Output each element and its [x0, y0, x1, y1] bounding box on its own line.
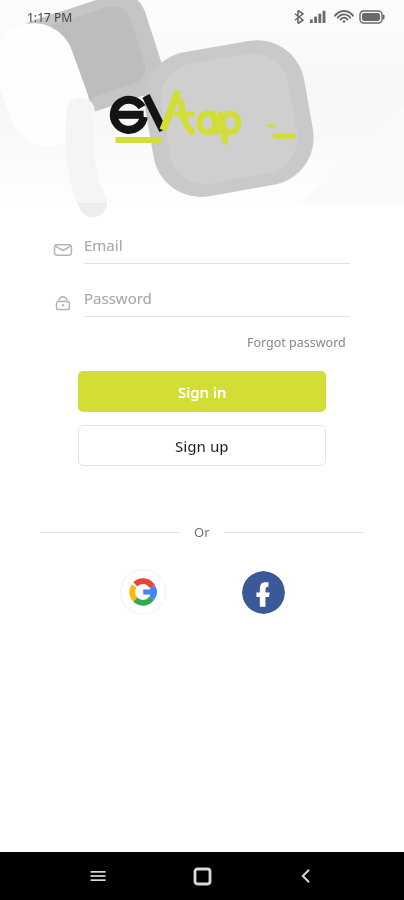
button[interactable]: Sign in with Google [120, 569, 166, 615]
button[interactable]: Back [286, 856, 326, 896]
button[interactable]: Sign up [78, 425, 326, 466]
staticText: Sign up [175, 436, 229, 456]
button[interactable]: Sign in [78, 371, 326, 412]
staticText: 1:17 PM [27, 9, 73, 25]
button[interactable]: Forgot password [243, 331, 350, 354]
staticText: Forgot password [247, 334, 346, 351]
button[interactable]: Password [54, 288, 350, 317]
button[interactable]: Sign in with Facebook [242, 571, 285, 614]
button[interactable]: Email [54, 235, 350, 264]
staticText: Password [84, 288, 152, 308]
staticText: Sign in [178, 382, 227, 402]
button[interactable]: Home [182, 856, 222, 896]
button[interactable]: Recent apps [78, 856, 118, 896]
staticText: Email [84, 235, 123, 255]
staticText: Or [194, 523, 210, 541]
